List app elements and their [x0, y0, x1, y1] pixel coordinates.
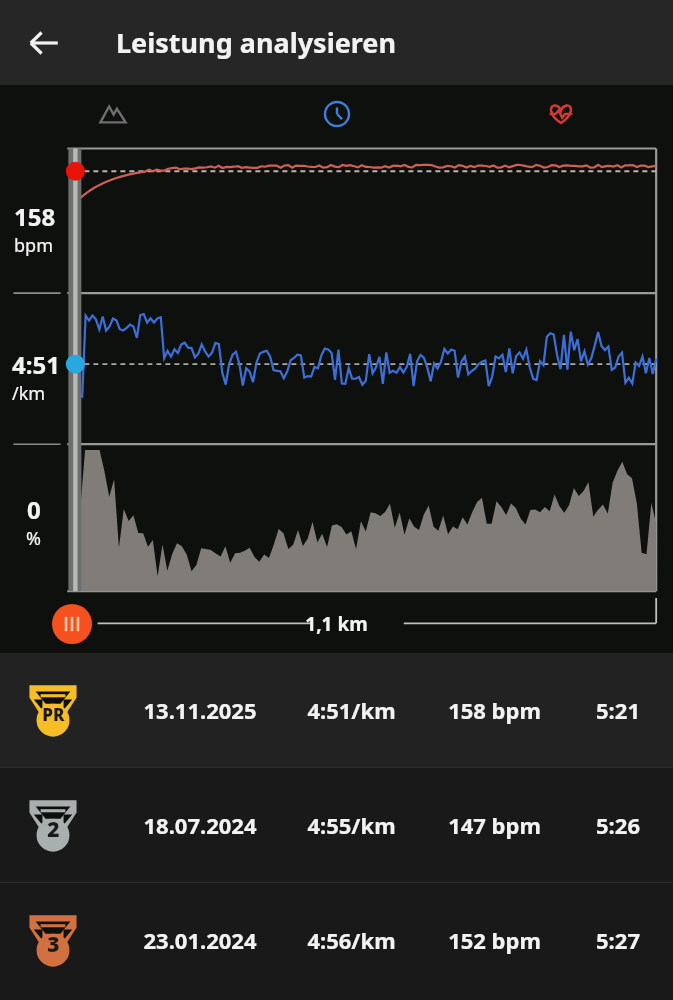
staticText: 13.11.2025 [143, 695, 257, 725]
staticText: 23.01.2024 [143, 925, 257, 955]
staticText: 4:51 [12, 348, 60, 381]
staticText: Leistung analysieren [116, 24, 397, 61]
button[interactable]: Höhe [0, 85, 225, 143]
staticText: 4:56/km [307, 925, 396, 955]
button[interactable]: Herzfrequenz [449, 85, 673, 143]
staticText: 158 bpm [448, 695, 541, 725]
staticText: 4:55/km [307, 810, 396, 840]
staticText: /km [12, 381, 46, 406]
staticText: 152 bpm [448, 925, 541, 955]
staticText: 4:51/km [307, 695, 396, 725]
staticText: 5:26 [596, 810, 640, 840]
button[interactable]: Zeit [225, 85, 449, 143]
staticText: 5:21 [596, 695, 640, 725]
button[interactable]: Position ziehen [52, 604, 92, 644]
staticText: bpm [14, 233, 53, 258]
staticText: 147 bpm [448, 810, 541, 840]
staticText: PR [42, 703, 65, 726]
button[interactable]: PR [0, 653, 673, 767]
staticText: 1,1 km [305, 611, 368, 637]
button[interactable]: 2 [0, 768, 673, 882]
staticText: 5:27 [596, 925, 640, 955]
staticText: % [26, 526, 41, 551]
button[interactable]: Zurück [14, 13, 74, 73]
staticText: 158 [14, 200, 56, 233]
staticText: 0 [27, 493, 41, 526]
staticText: 2 [47, 815, 60, 844]
button[interactable]: 3 [0, 883, 673, 997]
staticText: 18.07.2024 [143, 810, 257, 840]
staticText: 3 [47, 930, 60, 959]
